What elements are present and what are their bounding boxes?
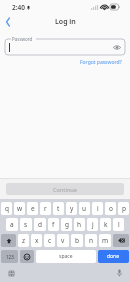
staticText: l [118, 220, 120, 229]
staticText: Continue [53, 186, 77, 193]
button[interactable]: w [14, 202, 25, 215]
button[interactable]: m [99, 234, 111, 247]
staticText: k [104, 220, 108, 229]
staticText: y [70, 204, 74, 213]
staticText: m [102, 236, 109, 245]
button[interactable]: z [18, 234, 29, 247]
staticText: p [122, 204, 126, 213]
button[interactable]: b [71, 234, 83, 247]
button[interactable]: done [98, 250, 129, 263]
staticText: h [77, 220, 82, 229]
staticText: 2:40 [12, 3, 25, 12]
button[interactable]: space [36, 250, 96, 263]
button[interactable]: j [87, 218, 98, 231]
staticText: r [44, 204, 47, 213]
button[interactable]: u [79, 202, 90, 215]
staticText: v [61, 236, 65, 245]
staticText: a [10, 220, 14, 229]
staticText: c [48, 236, 52, 245]
button[interactable]: Back [0, 14, 16, 30]
button[interactable]: 123 [1, 250, 18, 263]
button[interactable]: v [57, 234, 69, 247]
staticText: done [107, 253, 120, 260]
staticText: x [35, 236, 39, 245]
button[interactable]: Emoji [20, 250, 34, 263]
button[interactable]: Show password [112, 42, 122, 52]
button[interactable]: e [27, 202, 38, 215]
staticText: Forgot password? [80, 59, 122, 66]
staticText: g [65, 220, 69, 229]
button[interactable]: Continue [6, 183, 124, 195]
button[interactable]: q [1, 202, 12, 215]
staticText: 123 [6, 254, 14, 260]
button[interactable]: r [40, 202, 51, 215]
button[interactable]: g [61, 218, 72, 231]
button[interactable]: x [31, 234, 42, 247]
staticText: s [24, 220, 28, 229]
staticText: o [109, 204, 113, 213]
button[interactable]: d [34, 218, 46, 231]
staticText: t [57, 204, 60, 213]
button[interactable]: t [53, 202, 64, 215]
staticText: Password [12, 36, 33, 42]
staticText: Log in [55, 17, 76, 27]
staticText: space [59, 253, 73, 260]
staticText: q [5, 204, 9, 213]
button[interactable]: o [105, 202, 116, 215]
staticText: i [97, 204, 99, 213]
button[interactable]: Shift [1, 234, 16, 247]
staticText: e [31, 204, 35, 213]
staticText: b [75, 236, 79, 245]
button[interactable]: s [20, 218, 32, 231]
button[interactable]: k [100, 218, 111, 231]
button[interactable]: Backspace [113, 234, 129, 247]
staticText: u [82, 204, 87, 213]
button[interactable]: a [6, 218, 18, 231]
staticText: j [92, 220, 94, 229]
button[interactable]: h [74, 218, 85, 231]
button[interactable]: Voice input [114, 268, 124, 278]
button[interactable]: Forgot password? [78, 57, 124, 68]
staticText: z [22, 236, 26, 245]
button[interactable]: l [113, 218, 124, 231]
staticText: n [89, 236, 94, 245]
staticText: w [17, 204, 23, 213]
button[interactable]: c [44, 234, 55, 247]
button[interactable]: y [66, 202, 77, 215]
button[interactable]: p [118, 202, 129, 215]
staticText: d [38, 220, 42, 229]
button[interactable]: n [85, 234, 97, 247]
staticText: f [52, 220, 55, 229]
button[interactable]: f [48, 218, 59, 231]
button[interactable]: Change keyboard language [6, 268, 16, 278]
button[interactable]: i [92, 202, 103, 215]
